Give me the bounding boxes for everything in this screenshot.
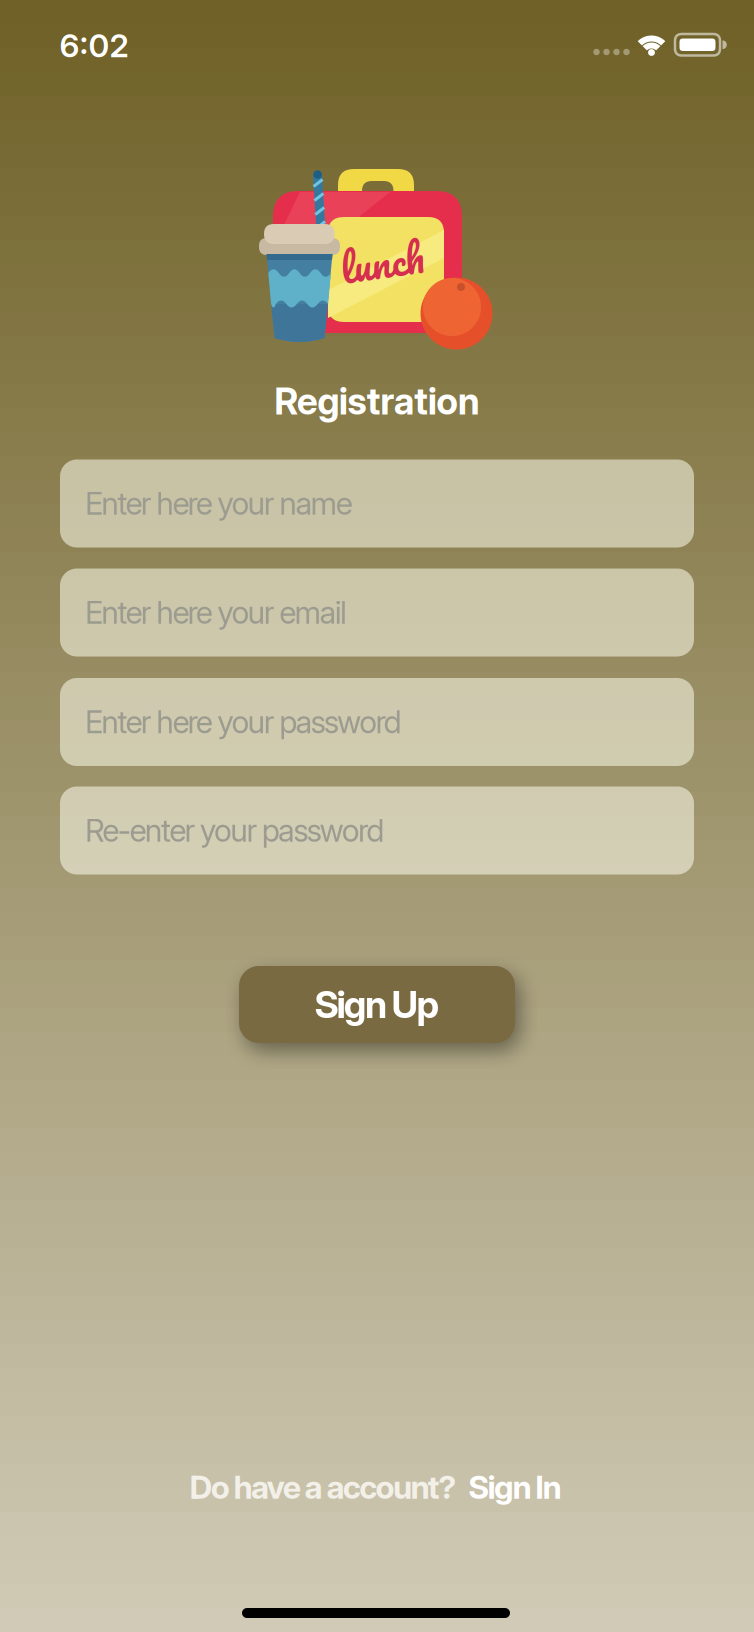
staticText: 6:02 [59,26,128,65]
staticText: Do have a account? [189,1468,456,1506]
staticText: Re-enter your password [85,812,384,849]
staticText: lunch [340,227,424,297]
staticText: Enter here your name [85,485,353,522]
button[interactable]: Sign Up [239,966,515,1043]
staticText: Enter here your email [85,594,347,631]
textField[interactable]: Re-enter your password [85,812,694,849]
button[interactable]: Sign In [468,1468,562,1506]
staticText: Sign Up [314,982,440,1027]
textField[interactable]: Enter here your email [85,594,694,631]
staticText: Registration [274,379,480,423]
staticText: Enter here your password [85,703,402,741]
textField[interactable]: Enter here your name [85,485,694,522]
textField[interactable]: Enter here your password [85,703,694,741]
staticText: Sign In [468,1468,562,1506]
